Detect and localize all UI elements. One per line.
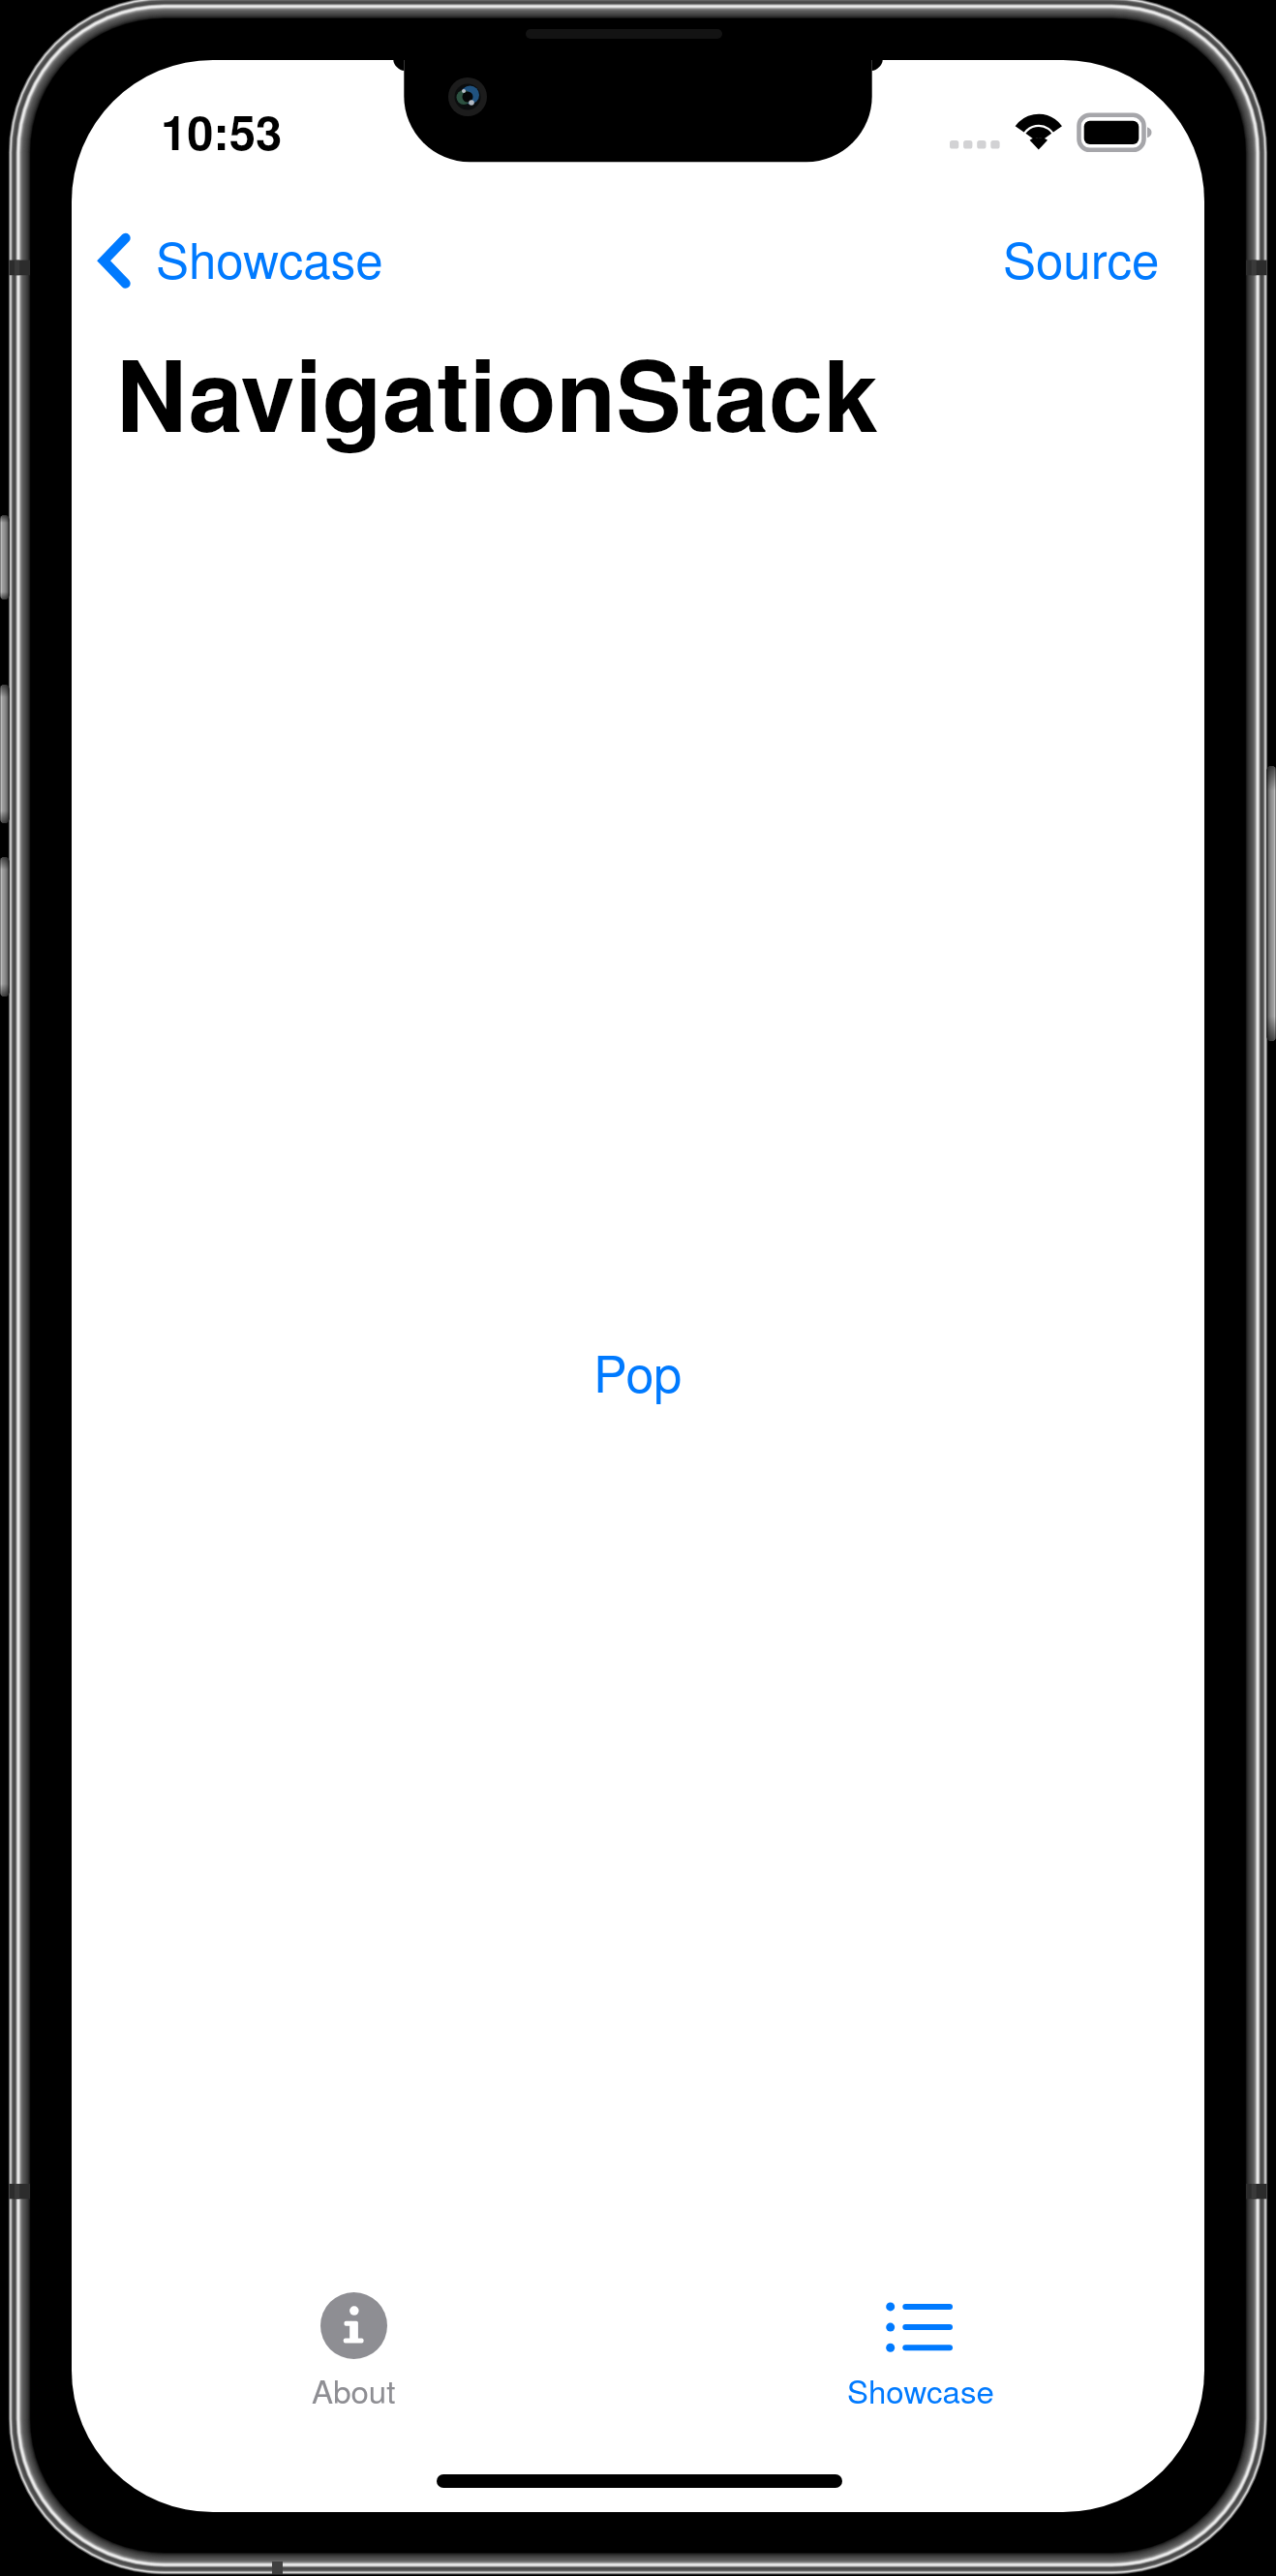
staticText: Showcase bbox=[847, 2367, 994, 2412]
staticText: NavigationStack bbox=[116, 322, 878, 462]
staticText: Pop bbox=[593, 1334, 683, 1406]
staticText: 10:53 bbox=[161, 97, 283, 165]
staticText: About bbox=[312, 2367, 396, 2412]
staticText: Source bbox=[1003, 222, 1160, 292]
button[interactable]: Showcase bbox=[638, 2278, 1204, 2421]
button[interactable]: Back to Showcase bbox=[86, 209, 396, 298]
staticText: Showcase bbox=[156, 222, 383, 292]
button[interactable]: Source bbox=[984, 209, 1173, 298]
button[interactable]: About bbox=[72, 2278, 638, 2421]
button[interactable]: Pop bbox=[573, 1322, 697, 1411]
